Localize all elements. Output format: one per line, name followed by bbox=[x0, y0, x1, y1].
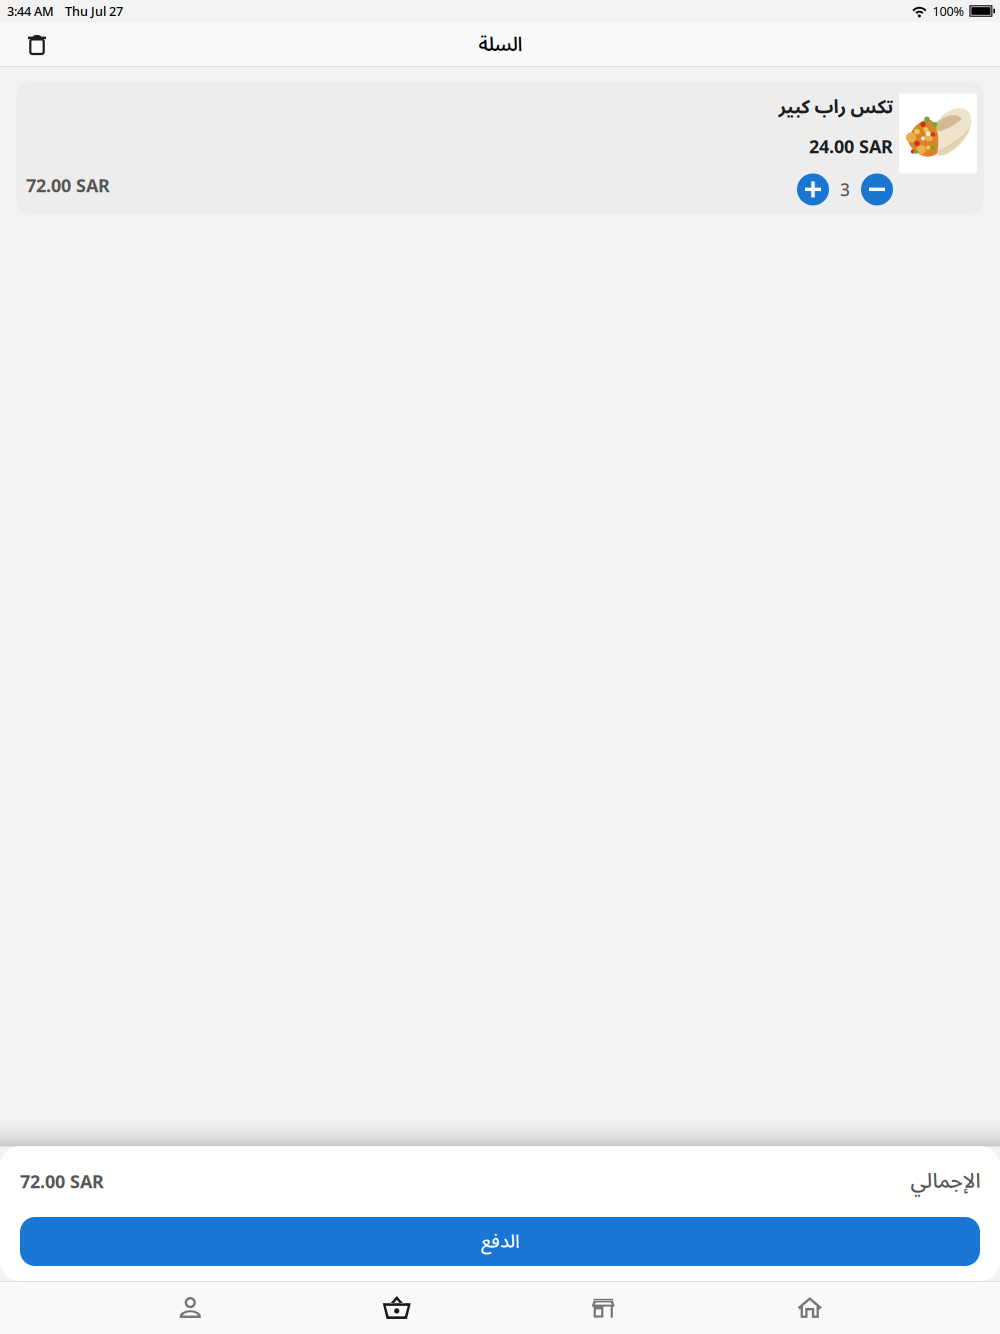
button[interactable]: Increase quantity bbox=[797, 173, 829, 205]
button[interactable]: الدفع bbox=[20, 1217, 980, 1266]
staticText: 3 bbox=[840, 178, 850, 201]
staticText: الدفع bbox=[480, 1222, 519, 1261]
staticText: تكس راب كبير bbox=[778, 87, 893, 127]
staticText: 3:44 AM bbox=[7, 2, 54, 20]
button[interactable]: Decrease quantity bbox=[861, 173, 893, 205]
button[interactable]: Account bbox=[87, 1281, 293, 1333]
button[interactable]: Home bbox=[706, 1281, 913, 1333]
button[interactable]: Cart bbox=[293, 1281, 500, 1333]
button[interactable]: Empty cart bbox=[0, 22, 64, 67]
staticText: 100% bbox=[932, 2, 964, 20]
staticText: 72.00 SAR bbox=[26, 173, 110, 197]
staticText: 72.00 SAR bbox=[20, 1169, 104, 1193]
staticText: 24.00 SAR bbox=[809, 134, 893, 158]
staticText: Thu Jul 27 bbox=[65, 2, 123, 20]
button[interactable]: Stores bbox=[500, 1281, 706, 1333]
staticText: الإجمالي bbox=[910, 1159, 980, 1203]
staticText: السلة bbox=[478, 23, 522, 66]
